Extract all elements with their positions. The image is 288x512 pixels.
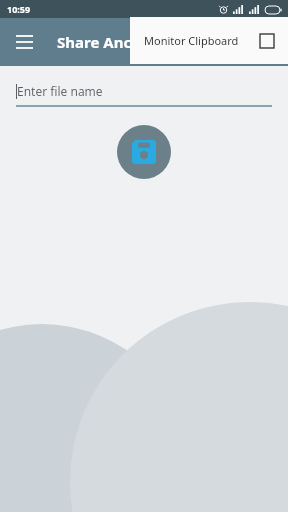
staticText: Enter file name [17, 83, 103, 99]
staticText: Share Anc [57, 32, 132, 52]
staticText: 10:59 [7, 3, 31, 15]
staticText: Monitor Clipboard [144, 33, 239, 48]
button[interactable]: Monitor Clipboard [130, 17, 288, 64]
button[interactable]: Open navigation menu [8, 26, 40, 58]
button[interactable]: Save file [117, 125, 171, 179]
